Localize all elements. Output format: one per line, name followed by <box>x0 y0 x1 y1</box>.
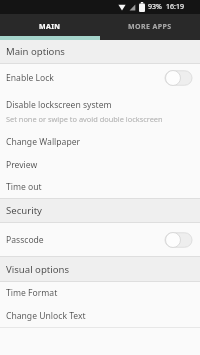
staticText: Set none or swipe to avoid double locksc… <box>6 114 163 124</box>
staticText: Visual options <box>6 263 70 276</box>
button[interactable]: Time out <box>0 176 200 198</box>
button[interactable]: Passcode <box>0 223 200 256</box>
button[interactable]: Disable lockscreen system <box>0 92 200 130</box>
staticText: Preview <box>6 159 38 171</box>
staticText: Disable lockscreen system <box>6 99 112 111</box>
button[interactable]: Change Wallpaper <box>0 130 200 153</box>
button[interactable]: MAIN <box>0 14 100 40</box>
button[interactable]: Change Unlock Text <box>0 304 200 327</box>
staticText: Main options <box>6 45 65 58</box>
staticText: Change Unlock Text <box>6 310 86 322</box>
button[interactable]: Time Format <box>0 282 200 304</box>
staticText: Time Format <box>6 287 58 299</box>
staticText: Time out <box>6 181 42 193</box>
button[interactable]: MORE APPS <box>100 14 200 40</box>
staticText: MAIN <box>39 22 61 32</box>
staticText: 16:19 <box>166 2 184 12</box>
staticText: Security <box>6 204 43 217</box>
staticText: Passcode <box>6 234 44 246</box>
staticText: 93% <box>148 2 162 12</box>
staticText: Enable Lock <box>6 72 54 84</box>
button[interactable]: Enable Lock <box>0 64 200 92</box>
button[interactable]: Preview <box>0 153 200 176</box>
staticText: Change Wallpaper <box>6 136 81 148</box>
staticText: MORE APPS <box>128 22 172 32</box>
